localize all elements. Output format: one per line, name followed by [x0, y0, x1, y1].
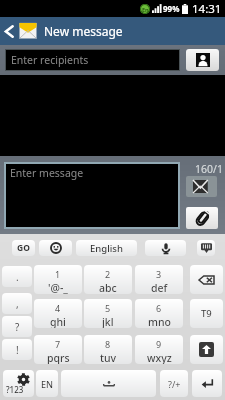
- button[interactable]: Symbols: [3, 370, 34, 397]
- staticText: ?123: [6, 384, 24, 395]
- staticText: 99%: [163, 3, 180, 14]
- staticText: !: [16, 343, 19, 357]
- button[interactable]: Send: [186, 176, 217, 197]
- button[interactable]: English: [76, 240, 137, 256]
- button[interactable]: 3: [135, 265, 183, 294]
- button[interactable]: GO: [12, 240, 35, 256]
- staticText: tuv: [100, 351, 117, 364]
- staticText: 3: [156, 268, 162, 280]
- button[interactable]: ,: [2, 293, 32, 314]
- button[interactable]: Attach: [186, 207, 218, 229]
- staticText: ?: [15, 320, 20, 334]
- button[interactable]: !: [2, 339, 32, 360]
- button[interactable]: 8: [84, 335, 132, 364]
- staticText: mno: [148, 315, 171, 328]
- staticText: GO: [17, 242, 30, 254]
- button[interactable]: Hide keyboard: [197, 240, 215, 256]
- button[interactable]: T9: [190, 299, 223, 328]
- button[interactable]: Enter message: [6, 164, 178, 227]
- staticText: 7: [55, 338, 61, 350]
- button[interactable]: Enter: [192, 370, 222, 397]
- staticText: Enter recipients: [11, 53, 89, 67]
- staticText: New message: [44, 23, 123, 39]
- button[interactable]: .: [2, 266, 32, 287]
- staticText: 14:31: [192, 1, 222, 17]
- button[interactable]: 7: [34, 335, 82, 364]
- staticText: pqrs: [47, 351, 70, 364]
- staticText: def: [151, 281, 168, 294]
- staticText: wxyz: [147, 351, 172, 364]
- button[interactable]: 2: [84, 265, 132, 294]
- staticText: 9: [156, 338, 162, 350]
- button[interactable]: Contacts: [186, 49, 219, 71]
- staticText: .: [16, 270, 19, 284]
- staticText: 1: [55, 268, 61, 280]
- button[interactable]: Emoji: [39, 240, 72, 256]
- button[interactable]: Shift: [190, 335, 223, 364]
- staticText: English: [90, 242, 123, 255]
- staticText: 8: [105, 338, 111, 350]
- staticText: ?/+: [168, 378, 181, 390]
- button[interactable]: 5: [84, 299, 132, 328]
- button[interactable]: Enter recipients: [6, 50, 179, 70]
- button[interactable]: Backspace: [190, 265, 223, 294]
- button[interactable]: Back: [0, 17, 18, 45]
- staticText: ,: [16, 297, 19, 311]
- staticText: abc: [99, 281, 117, 294]
- button[interactable]: 1: [34, 265, 82, 294]
- staticText: 2: [105, 268, 111, 280]
- button[interactable]: 6: [135, 299, 183, 328]
- staticText: T9: [201, 307, 212, 320]
- button[interactable]: EN: [36, 370, 58, 397]
- staticText: jkl: [102, 315, 114, 328]
- staticText: '@-_: [48, 281, 68, 294]
- button[interactable]: ?/+: [160, 370, 188, 397]
- staticText: 6: [156, 302, 162, 314]
- staticText: 4: [55, 302, 61, 314]
- button[interactable]: 4: [34, 299, 82, 328]
- staticText: 160/1: [195, 162, 223, 176]
- button[interactable]: ?: [2, 316, 32, 337]
- staticText: EN: [41, 378, 53, 390]
- button[interactable]: Voice input: [145, 240, 186, 256]
- staticText: ghi: [50, 315, 66, 328]
- staticText: 5: [105, 302, 111, 314]
- button[interactable]: Space: [61, 370, 156, 397]
- staticText: Enter message: [10, 166, 84, 180]
- staticText: En: [142, 6, 149, 13]
- button[interactable]: 9: [135, 335, 183, 364]
